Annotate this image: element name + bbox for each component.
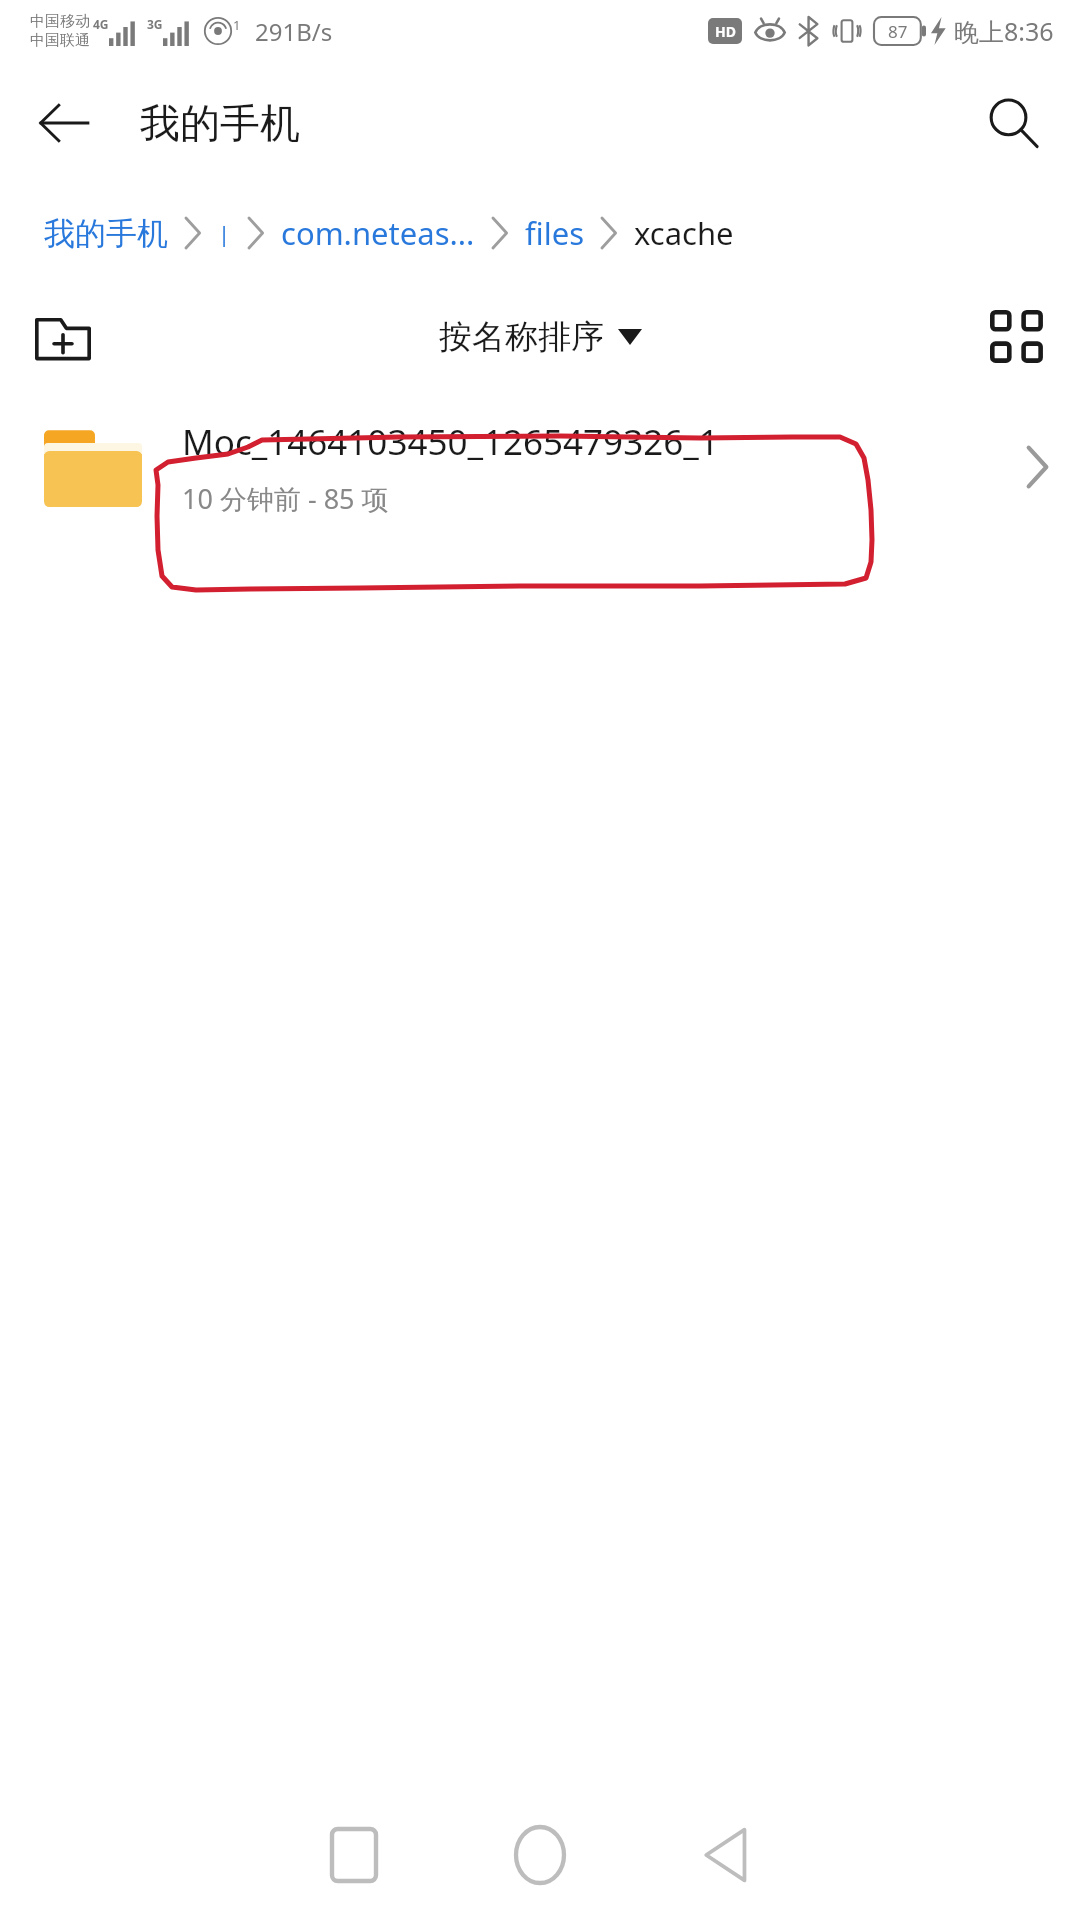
staticText: com.neteas... — [281, 212, 475, 254]
button[interactable]: Grid view — [978, 298, 1056, 376]
button[interactable]: Home — [480, 1795, 600, 1915]
staticText: 87 — [888, 20, 908, 43]
button[interactable]: com.neteas... — [281, 212, 475, 254]
button[interactable]: Back — [26, 85, 102, 161]
staticText: xcache — [634, 212, 734, 254]
button[interactable]: files — [525, 212, 584, 254]
button[interactable]: New folder — [24, 298, 102, 376]
staticText: | — [218, 218, 231, 248]
button[interactable]: 我的手机 — [44, 214, 168, 253]
button[interactable]: Back — [666, 1795, 786, 1915]
staticText: Moc_1464103450_1265479326_1 — [182, 418, 719, 466]
staticText: 我的手机 — [44, 214, 168, 253]
button[interactable]: 按名称排序 — [439, 316, 642, 358]
staticText: 按名称排序 — [439, 316, 604, 358]
button[interactable]: | — [218, 218, 231, 248]
button[interactable]: Recents — [294, 1795, 414, 1915]
staticText: 291B/s — [255, 15, 333, 48]
staticText: 我的手机 — [140, 98, 300, 148]
staticText: 中国联通 — [30, 31, 90, 50]
staticText: 晚上8:36 — [954, 14, 1054, 48]
staticText: 10 分钟前 - 85 项 — [182, 480, 389, 517]
staticText: HD — [715, 22, 736, 41]
button[interactable]: Search — [972, 82, 1054, 164]
button[interactable]: xcache — [634, 212, 734, 254]
staticText: 4G — [93, 16, 109, 32]
button[interactable]: Moc_1464103450_1265479326_1 — [0, 392, 1080, 542]
staticText: files — [525, 212, 584, 254]
staticText: 中国移动 — [30, 12, 90, 31]
staticText: 1 — [233, 16, 241, 34]
staticText: 3G — [147, 16, 163, 32]
